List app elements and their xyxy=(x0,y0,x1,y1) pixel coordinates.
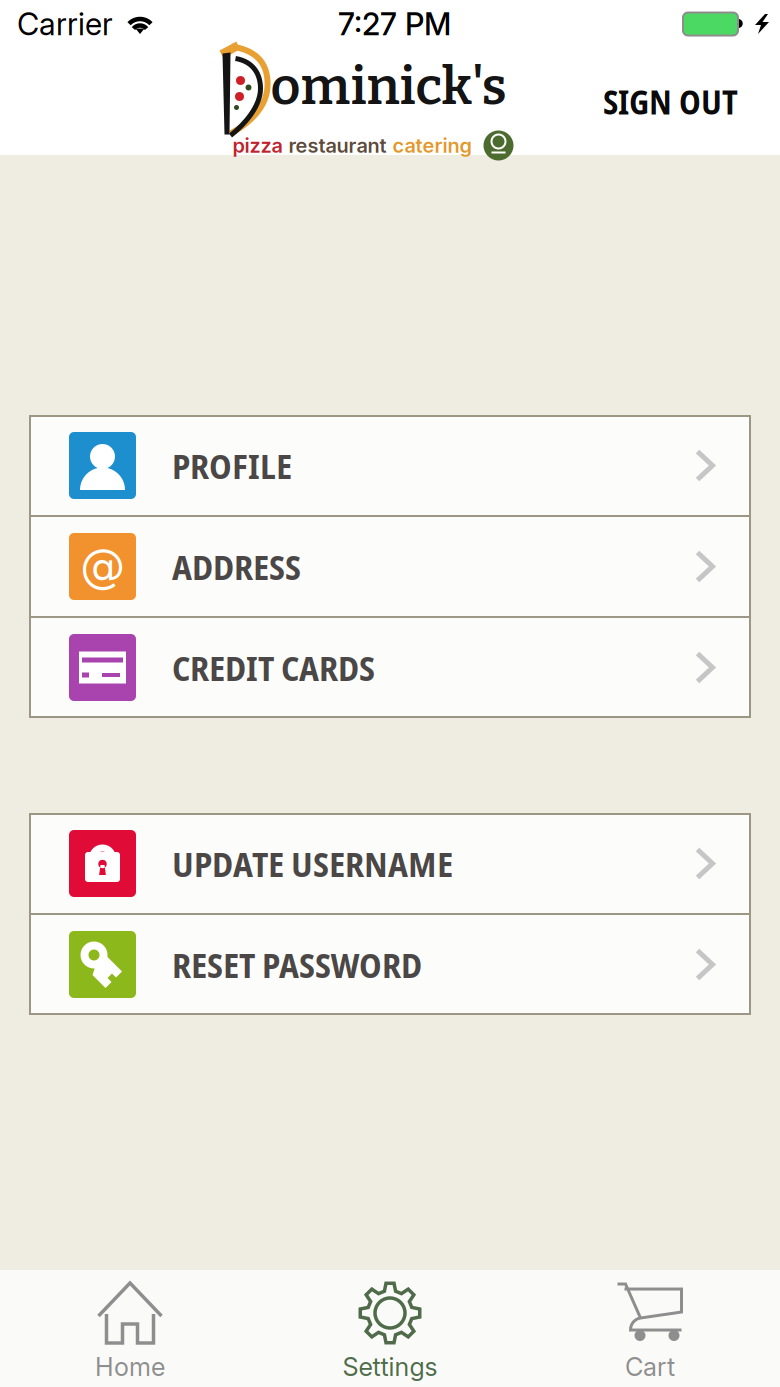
staticText: SIGN OUT xyxy=(603,79,738,124)
button[interactable]: SIGN OUT xyxy=(585,57,756,146)
button[interactable]: RESET PASSWORD xyxy=(30,915,750,1014)
staticText: pizza xyxy=(232,133,282,158)
button[interactable]: @ xyxy=(30,517,750,616)
staticText: PROFILE xyxy=(172,442,292,489)
button[interactable]: UPDATE USERNAME xyxy=(30,814,750,913)
button[interactable]: CREDIT CARDS xyxy=(30,618,750,717)
staticText: Settings xyxy=(342,1351,437,1382)
button[interactable]: Home xyxy=(0,1270,260,1387)
staticText: catering xyxy=(392,133,471,158)
staticText: ominick's xyxy=(270,55,506,118)
staticText: RESET PASSWORD xyxy=(172,941,422,988)
staticText: ADDRESS xyxy=(172,543,301,590)
staticText: restaurant xyxy=(288,133,386,158)
staticText: Home xyxy=(95,1351,165,1382)
staticText: Carrier xyxy=(17,5,113,42)
button[interactable]: Cart xyxy=(520,1270,780,1387)
staticText: UPDATE USERNAME xyxy=(172,840,453,887)
button[interactable]: PROFILE xyxy=(30,416,750,515)
staticText: 7:27 PM xyxy=(338,5,451,42)
staticText: Cart xyxy=(625,1351,675,1382)
staticText: CREDIT CARDS xyxy=(172,644,375,691)
button[interactable]: Settings xyxy=(260,1270,520,1387)
staticText: @ xyxy=(80,540,125,593)
